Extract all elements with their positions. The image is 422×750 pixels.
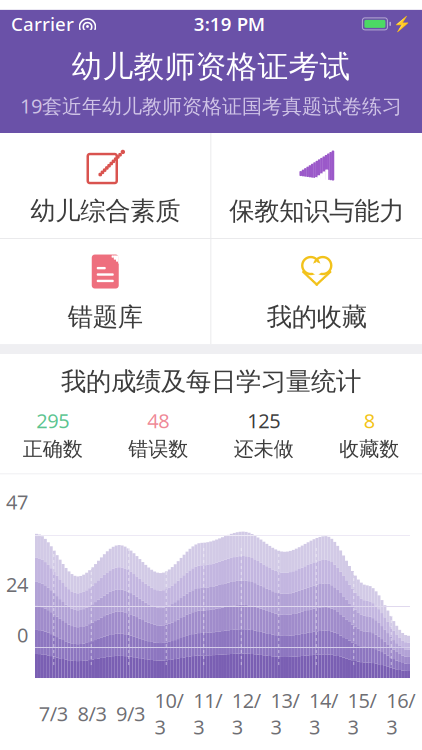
staticText: 295	[36, 407, 69, 434]
staticText: 正确数	[23, 437, 83, 461]
staticText: 47	[6, 488, 28, 515]
staticText: 错误数	[128, 437, 188, 461]
staticText: 24	[6, 571, 28, 597]
staticText: 48	[147, 407, 169, 434]
staticText: 16/3	[386, 687, 415, 740]
staticText: 8/3	[77, 700, 106, 727]
staticText: 19套近年幼儿教师资格证国考真题试卷练习	[20, 92, 402, 119]
staticText: 125	[247, 407, 280, 434]
staticText: 15/3	[348, 687, 377, 740]
staticText: 13/3	[270, 687, 299, 740]
staticText: Carrier	[11, 11, 74, 36]
staticText: 收藏数	[339, 437, 399, 461]
staticText: 保教知识与能力	[229, 195, 404, 227]
staticText: 14/3	[309, 687, 338, 740]
staticText: 8	[364, 407, 375, 434]
staticText: 11/3	[193, 687, 222, 740]
staticText: 12/3	[232, 687, 261, 740]
staticText: 我的收藏	[267, 301, 367, 333]
staticText: 0	[17, 621, 28, 648]
button[interactable]: 我的收藏	[211, 239, 422, 344]
staticText: 10/3	[155, 687, 184, 740]
staticText: 9/3	[116, 700, 145, 727]
staticText: 3:19 PM	[194, 11, 265, 36]
button[interactable]: 错题库	[0, 239, 210, 344]
button[interactable]: 幼儿综合素质	[0, 133, 210, 238]
staticText: ⚡	[393, 15, 411, 32]
button[interactable]: 保教知识与能力	[211, 133, 422, 238]
staticText: 7/3	[39, 700, 68, 727]
staticText: 我的成绩及每日学习量统计	[61, 366, 361, 397]
staticText: 幼儿教师资格证考试	[71, 48, 350, 86]
staticText: 幼儿综合素质	[30, 195, 180, 227]
staticText: 还未做	[234, 437, 294, 461]
staticText: 错题库	[68, 301, 143, 333]
